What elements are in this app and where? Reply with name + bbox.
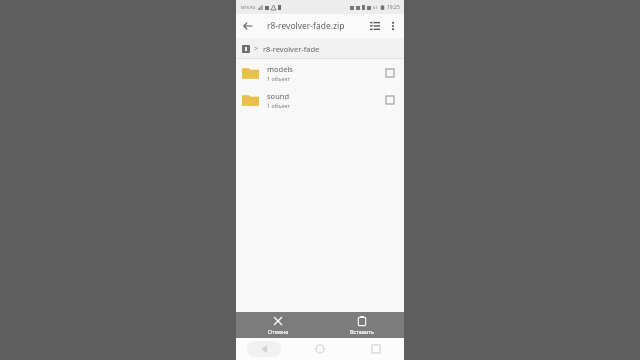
button[interactable]: sound: [236, 86, 404, 113]
staticText: Вставить: [350, 328, 374, 335]
button[interactable]: Отмена: [236, 312, 320, 338]
staticText: 19:25: [387, 4, 400, 11]
button[interactable]: Вставить: [320, 312, 404, 338]
button[interactable]: More options: [384, 17, 402, 35]
button[interactable]: Select sound: [379, 89, 401, 111]
staticText: MTS.RU: [241, 5, 256, 10]
button[interactable]: View mode: [366, 17, 384, 35]
button[interactable]: Back: [247, 341, 281, 357]
staticText: r8-revolver-fade.zip: [267, 20, 345, 32]
button[interactable]: Home: [292, 338, 348, 360]
staticText: r8-revolver-fade: [263, 44, 320, 54]
button[interactable]: models: [236, 59, 404, 86]
staticText: 1 объект: [267, 102, 291, 109]
staticText: models: [267, 64, 293, 74]
staticText: >: [254, 44, 259, 54]
staticText: 61: [373, 5, 378, 10]
staticText: sound: [267, 91, 290, 101]
staticText: Отмена: [268, 328, 289, 335]
button[interactable]: Select models: [379, 62, 401, 84]
button[interactable]: Back: [239, 17, 257, 35]
button[interactable]: Recents: [348, 338, 404, 360]
button[interactable]: >: [236, 38, 404, 59]
staticText: 1 объект: [267, 75, 291, 82]
